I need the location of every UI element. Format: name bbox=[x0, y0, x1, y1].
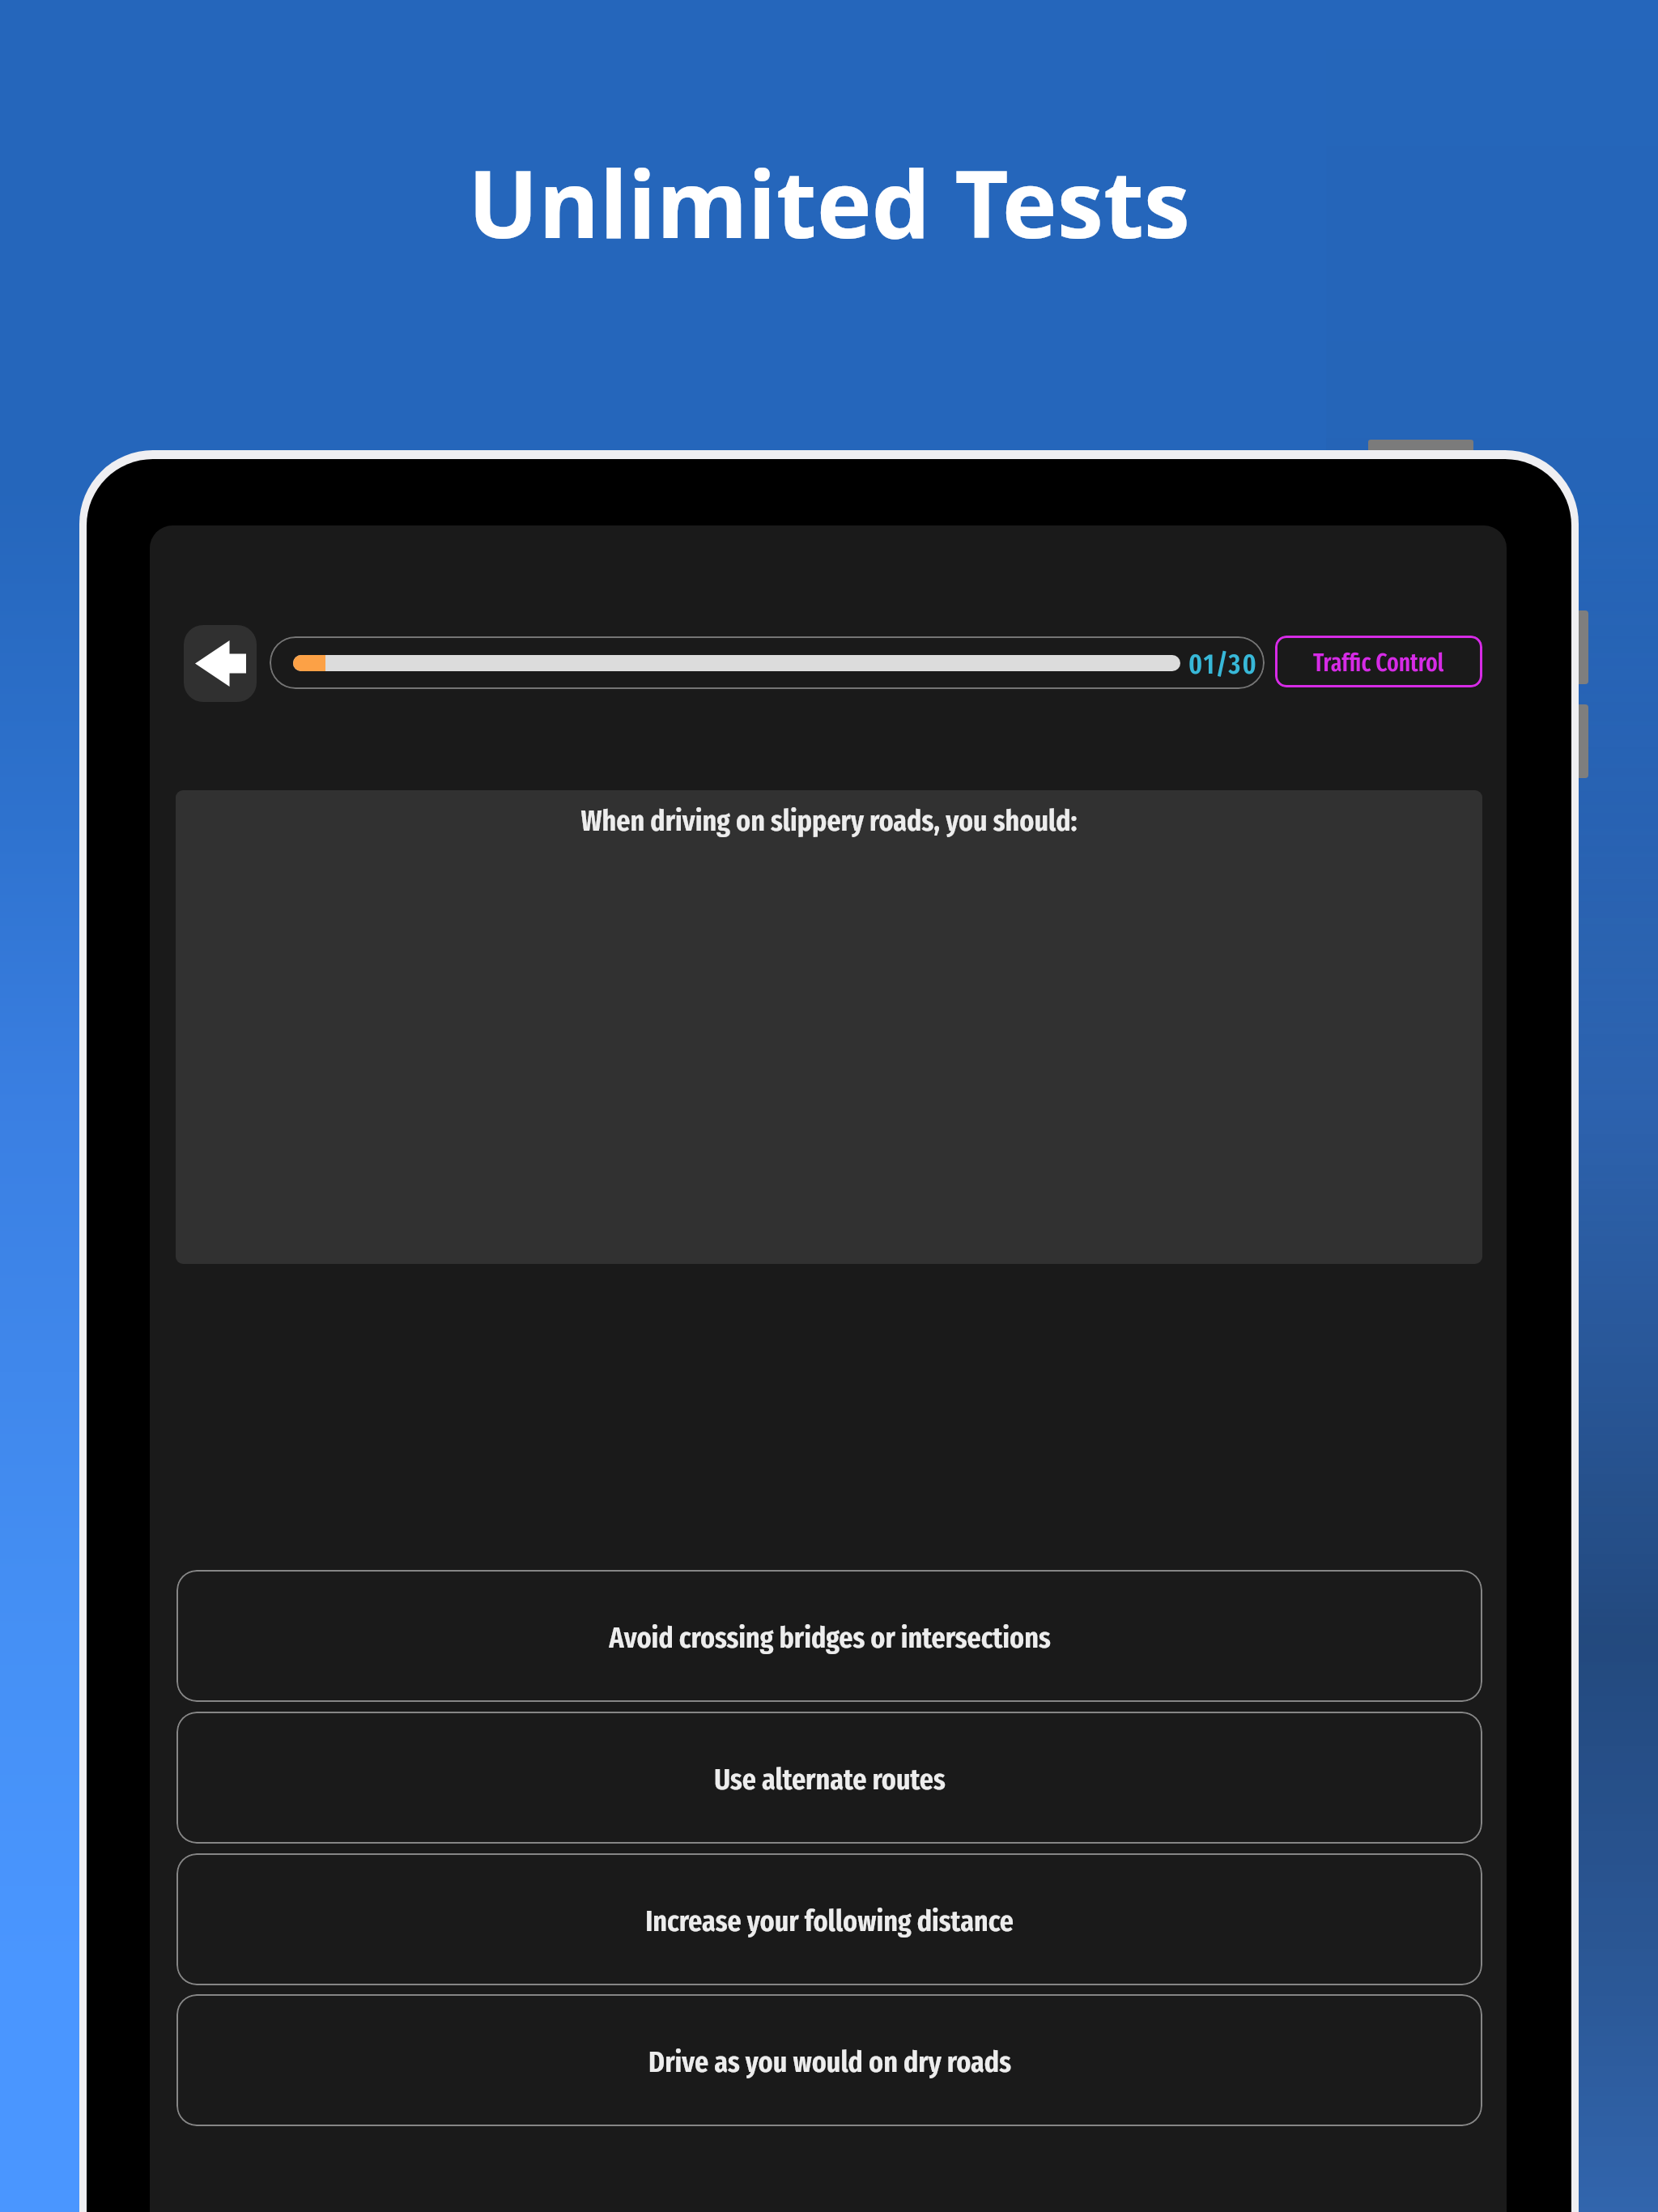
button[interactable]: Traffic Control bbox=[1275, 636, 1482, 687]
staticText: When driving on slippery roads, you shou… bbox=[580, 802, 1078, 838]
staticText: Traffic Control bbox=[1313, 649, 1444, 678]
staticText: Increase your following distance bbox=[645, 1903, 1014, 1938]
staticText: Unlimited Tests bbox=[468, 138, 1190, 266]
button[interactable]: Back bbox=[184, 625, 257, 702]
staticText: Avoid crossing bridges or intersections bbox=[609, 1619, 1051, 1655]
button[interactable]: Avoid crossing bridges or intersections bbox=[176, 1570, 1482, 1702]
button[interactable]: Increase your following distance bbox=[176, 1853, 1482, 1985]
button[interactable]: Use alternate routes bbox=[176, 1712, 1482, 1844]
button[interactable]: 01/30 bbox=[270, 636, 1265, 689]
button[interactable]: Drive as you would on dry roads bbox=[176, 1994, 1482, 2126]
staticText: Drive as you would on dry roads bbox=[648, 2044, 1011, 2079]
staticText: Use alternate routes bbox=[714, 1761, 946, 1797]
staticText: 01/30 bbox=[1188, 648, 1258, 681]
